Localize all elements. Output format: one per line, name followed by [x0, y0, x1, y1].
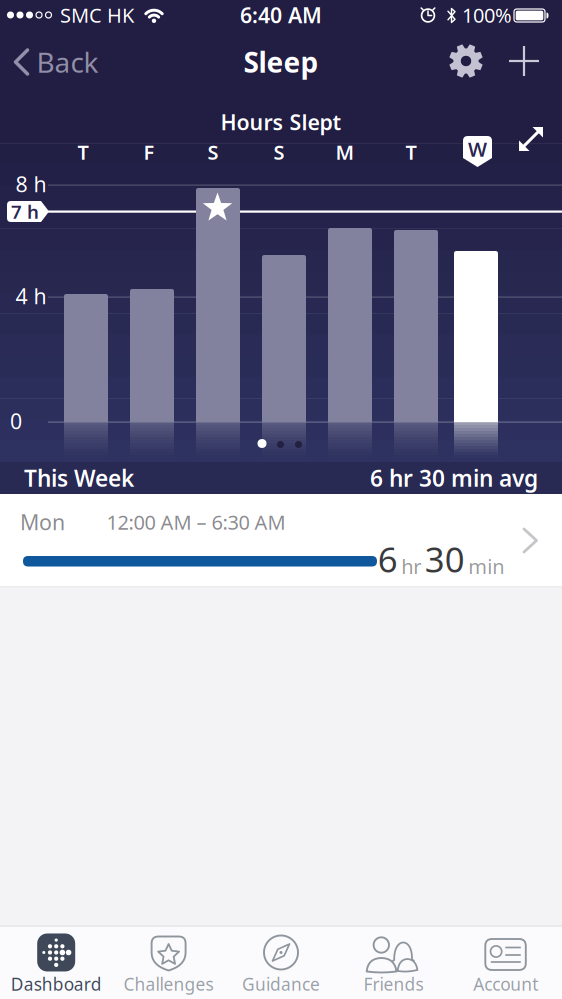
staticText: hr	[401, 553, 421, 580]
staticText: 30	[425, 536, 465, 582]
button[interactable]: Account	[450, 928, 562, 998]
staticText: 4 h	[15, 282, 46, 310]
staticText: Challenges	[124, 972, 214, 995]
staticText: S	[273, 139, 284, 165]
staticText: Dashboard	[11, 972, 102, 995]
staticText: 6	[378, 536, 398, 582]
staticText: 6 hr 30 min avg	[370, 463, 538, 493]
button[interactable]: Back	[12, 40, 100, 84]
button[interactable]: S	[259, 137, 299, 167]
staticText: Hours Slept	[220, 108, 341, 136]
button[interactable]: Friends	[337, 928, 450, 998]
button[interactable]: M	[325, 137, 365, 167]
staticText: W	[468, 136, 487, 162]
button[interactable]	[517, 125, 545, 153]
staticText: 6:40 AM	[240, 1, 322, 29]
staticText: This Week	[24, 463, 134, 493]
button[interactable]: S	[193, 137, 233, 167]
button[interactable]: Guidance	[225, 928, 337, 998]
staticText: min	[468, 553, 504, 580]
button[interactable]: T	[391, 137, 431, 167]
staticText: 12:00 AM – 6:30 AM	[106, 509, 285, 535]
staticText: Guidance	[242, 972, 320, 995]
button[interactable]	[509, 46, 539, 76]
staticText: Mon	[20, 508, 65, 536]
button[interactable]: T	[63, 137, 103, 167]
staticText: T	[77, 139, 88, 165]
staticText: Back	[36, 43, 98, 81]
button[interactable]	[447, 42, 485, 80]
button[interactable]: Mon	[0, 494, 562, 586]
staticText: 8 h	[15, 170, 46, 198]
staticText: SMC HK	[60, 2, 134, 28]
staticText: T	[405, 139, 416, 165]
staticText: Friends	[363, 972, 423, 995]
staticText: 7 h	[11, 199, 39, 224]
staticText: Account	[473, 972, 538, 995]
button[interactable]: Challenges	[112, 928, 225, 998]
staticText: 0	[10, 407, 22, 435]
staticText: Sleep	[243, 43, 318, 81]
button[interactable]: Dashboard	[0, 928, 112, 998]
staticText: S	[207, 139, 218, 165]
staticText: F	[143, 139, 154, 165]
staticText: 100%	[462, 2, 512, 28]
button[interactable]: W	[463, 136, 492, 167]
button[interactable]: F	[129, 137, 169, 167]
staticText: M	[335, 139, 354, 165]
